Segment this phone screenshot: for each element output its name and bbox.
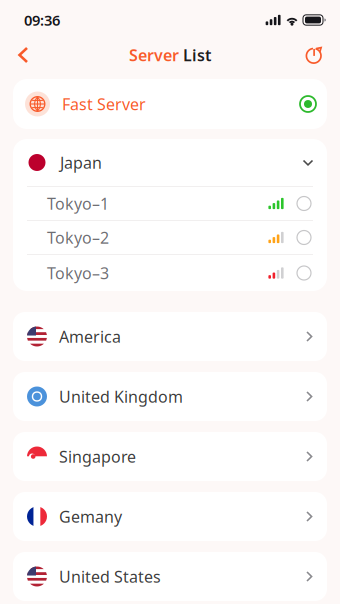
button[interactable]: Tokyo–2 bbox=[13, 221, 327, 254]
button[interactable]: Tokyo–3 bbox=[13, 256, 327, 289]
button[interactable]: Fast Server bbox=[13, 79, 327, 129]
staticText: Server bbox=[129, 44, 183, 66]
button[interactable]: Tokyo–1 bbox=[13, 187, 327, 220]
button[interactable]: Singapore bbox=[13, 432, 327, 481]
staticText: 09:36 bbox=[24, 10, 60, 30]
button[interactable]: Back bbox=[8, 39, 40, 71]
button[interactable]: United States bbox=[13, 552, 327, 601]
staticText: Singapore bbox=[59, 446, 136, 467]
button[interactable]: United Kingdom bbox=[13, 372, 327, 421]
staticText: United Kingdom bbox=[59, 386, 183, 407]
button[interactable]: America bbox=[13, 312, 327, 361]
staticText: Tokyo–2 bbox=[47, 227, 109, 248]
button[interactable]: Refresh bbox=[297, 39, 332, 70]
staticText: Gemany bbox=[59, 506, 122, 527]
button[interactable]: Japan bbox=[13, 139, 327, 186]
button[interactable]: Gemany bbox=[13, 492, 327, 541]
staticText: United States bbox=[59, 566, 161, 587]
staticText: List bbox=[183, 44, 211, 66]
staticText: Japan bbox=[60, 152, 102, 173]
staticText: Tokyo–3 bbox=[47, 262, 109, 284]
staticText: Fast Server bbox=[62, 93, 146, 115]
staticText: America bbox=[59, 326, 121, 347]
staticText: Tokyo–1 bbox=[47, 193, 109, 214]
